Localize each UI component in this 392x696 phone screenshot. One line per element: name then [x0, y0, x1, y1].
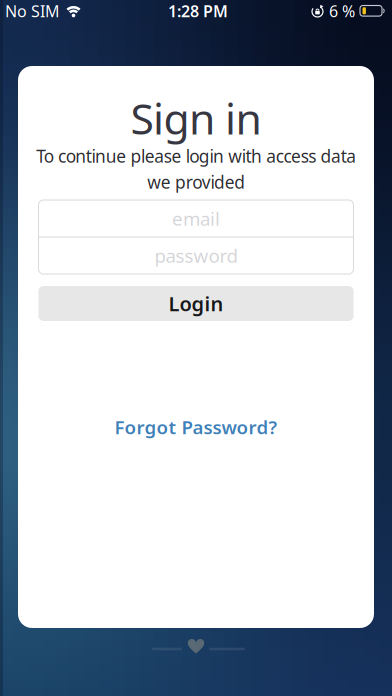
staticText: password	[38, 240, 142, 270]
textField[interactable]: password	[38, 240, 353, 270]
staticText: 6 %	[329, 0, 355, 22]
textField[interactable]: email	[38, 203, 353, 233]
staticText: No SIM	[5, 0, 60, 22]
staticText: Login	[168, 290, 223, 317]
staticText: To continue please login with access dat…	[36, 144, 356, 193]
button[interactable]: Forgot Password?	[106, 409, 285, 445]
staticText: email	[172, 206, 220, 231]
button[interactable]: Login	[38, 286, 353, 321]
staticText: Forgot Password?	[114, 415, 277, 439]
staticText: Sign in	[130, 90, 261, 146]
staticText: email	[38, 203, 97, 233]
staticText: password	[154, 243, 237, 268]
staticText: 1:28 PM	[168, 0, 228, 22]
